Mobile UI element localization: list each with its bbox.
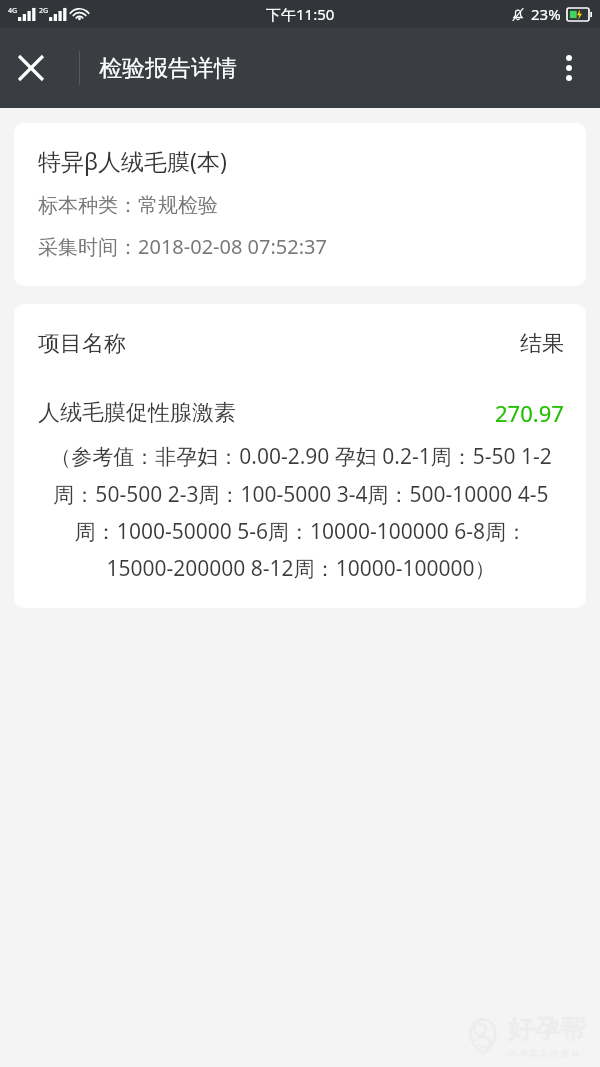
staticText: （参考值：非孕妇：0.00-2.90 孕妇 0.2-1周：5-50 1-2周：5… <box>38 442 564 582</box>
staticText: 结果 <box>520 330 564 358</box>
staticText: 标本种类：常规检验 <box>38 193 218 218</box>
staticText: 270.97 <box>495 398 564 428</box>
staticText: 23% <box>531 4 561 24</box>
staticText: 检验报告详情 <box>99 54 237 83</box>
staticText: 特异β人绒毛膜(本) <box>38 145 227 176</box>
staticText: 采集时间：2018-02-08 07:52:37 <box>38 233 327 260</box>
staticText: 4G <box>8 6 18 16</box>
staticText: 2G <box>39 6 49 16</box>
staticText: 好孕帮 <box>508 1013 586 1046</box>
staticText: 下午11:50 <box>266 4 335 24</box>
button[interactable]: Close <box>0 37 62 99</box>
staticText: 项目名称 <box>38 330 126 358</box>
button[interactable]: More options <box>538 37 600 99</box>
staticText: 人绒毛膜促性腺激素 <box>38 399 236 427</box>
